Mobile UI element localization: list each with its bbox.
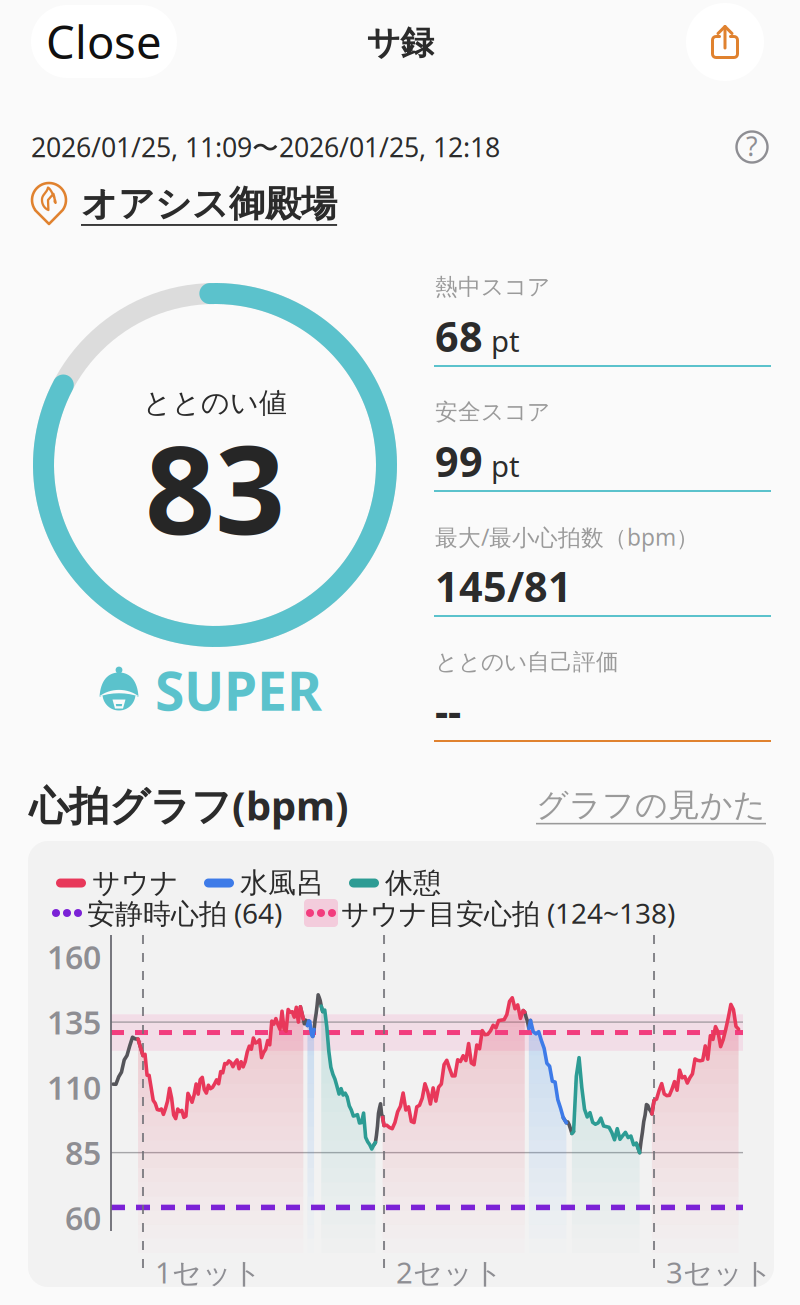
staticText: 1セット	[155, 1252, 262, 1291]
staticText: 安静時心拍 (64)	[87, 894, 282, 932]
staticText: 60	[65, 1197, 101, 1239]
button[interactable]: オアシス御殿場	[29, 180, 337, 228]
staticText: ?	[746, 128, 758, 164]
button[interactable]: Close	[31, 5, 177, 78]
staticText: サ録	[366, 22, 433, 63]
staticText: 135	[47, 1001, 101, 1043]
staticText: 145/81	[435, 559, 572, 613]
staticText: pt	[491, 321, 520, 360]
staticText: 3セット	[666, 1252, 773, 1291]
staticText: オアシス御殿場	[81, 182, 337, 226]
staticText: 2セット	[396, 1252, 503, 1291]
button[interactable]: Share	[686, 3, 764, 81]
staticText: 68	[435, 309, 483, 363]
staticText: 安全スコア	[435, 398, 550, 426]
staticText: ととのい自己評価	[435, 648, 619, 676]
button[interactable]: グラフの見かた	[590, 788, 766, 822]
button[interactable]: Help	[735, 130, 769, 164]
staticText: 85	[65, 1131, 101, 1174]
staticText: 110	[47, 1066, 101, 1109]
staticText: Close	[46, 11, 162, 72]
staticText: 熱中スコア	[435, 273, 550, 301]
staticText: 心拍グラフ(bpm)	[29, 778, 349, 831]
staticText: 水風呂	[240, 866, 324, 900]
staticText: グラフの見かた	[536, 785, 766, 825]
staticText: --	[435, 684, 461, 738]
staticText: 休憩	[385, 866, 441, 900]
staticText: 83	[145, 406, 285, 568]
staticText: 最大/最小心拍数（bpm）	[435, 522, 699, 552]
staticText: 99	[435, 434, 483, 488]
staticText: サウナ	[92, 866, 179, 900]
staticText: pt	[491, 446, 520, 485]
staticText: サウナ目安心拍 (124~138)	[341, 894, 675, 932]
staticText: ととのい値	[143, 386, 287, 420]
staticText: 2026/01/25, 11:09〜2026/01/25, 12:18	[31, 129, 500, 165]
staticText: 160	[47, 936, 101, 978]
staticText: SUPER	[155, 655, 322, 725]
